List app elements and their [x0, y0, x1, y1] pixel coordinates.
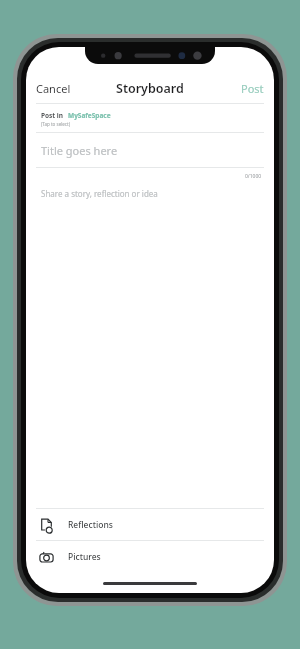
staticText: Post — [241, 81, 264, 96]
button[interactable]: Pictures — [26, 541, 274, 572]
staticText: (Tap to select) — [41, 121, 70, 127]
staticText: MySafeSpace — [68, 111, 111, 120]
button[interactable]: Post — [231, 75, 274, 102]
button[interactable]: Share a story, reflection or idea — [26, 186, 274, 508]
other: Pictures — [39, 550, 54, 565]
staticText: 0/1000 — [245, 173, 262, 180]
button[interactable]: Cancel — [26, 75, 81, 102]
staticText: Storyboard — [116, 80, 184, 97]
staticText: Title goes here — [41, 143, 118, 158]
button[interactable]: Reflections — [26, 509, 274, 540]
staticText: Pictures — [68, 551, 101, 563]
staticText: Share a story, reflection or idea — [41, 188, 158, 199]
staticText: Post in — [41, 111, 64, 120]
staticText: Cancel — [36, 81, 71, 96]
staticText: Reflections — [68, 519, 113, 531]
button[interactable]: Post in — [26, 104, 274, 132]
button[interactable]: Title goes here — [26, 133, 274, 167]
other: Reflections — [39, 518, 54, 533]
